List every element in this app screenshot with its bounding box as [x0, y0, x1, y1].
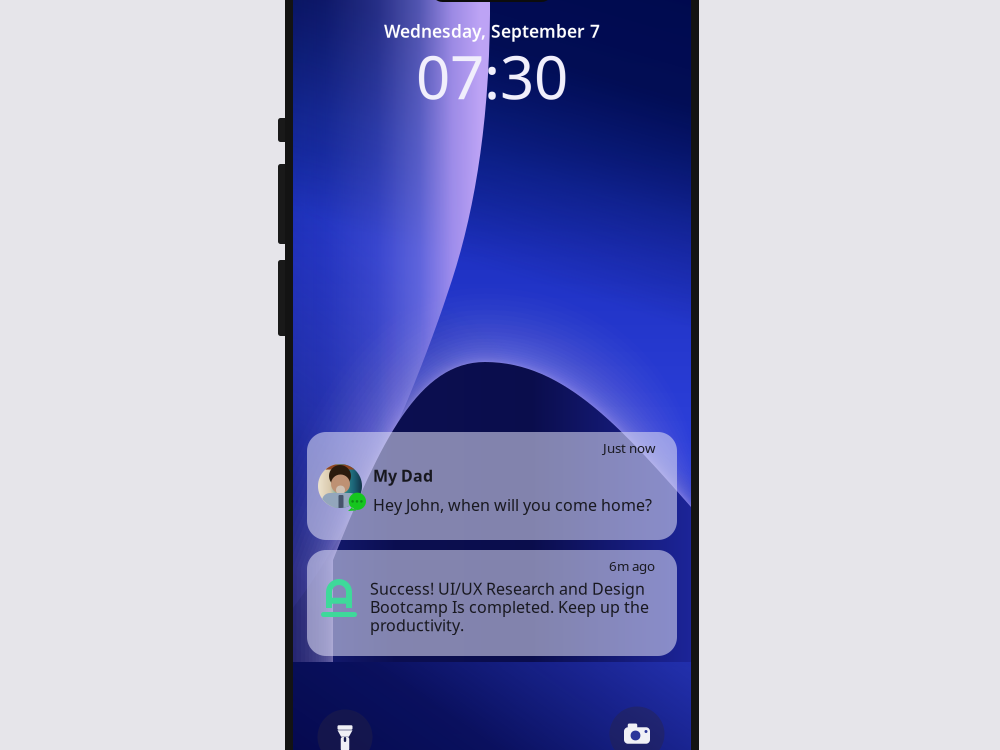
button[interactable]: Just now	[307, 432, 677, 540]
button[interactable]: Camera	[609, 706, 664, 750]
staticText: Success! UI/UX Research and Design Bootc…	[370, 578, 649, 636]
staticText: Just now	[603, 439, 655, 457]
staticText: Hey John, when will you come home?	[373, 494, 652, 515]
staticText: 6m ago	[609, 557, 655, 575]
button[interactable]: Flashlight	[317, 709, 372, 750]
staticText: 07:30	[416, 36, 568, 116]
button[interactable]: 6m ago	[307, 550, 677, 656]
staticText: Wednesday, September 7	[384, 19, 600, 42]
staticText: My Dad	[373, 465, 433, 486]
